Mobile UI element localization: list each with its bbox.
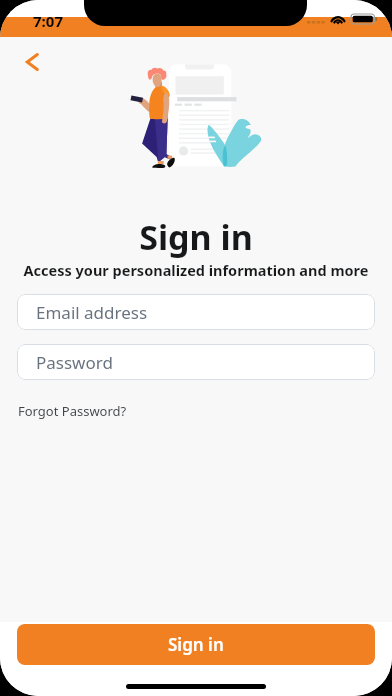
staticText: Email address [36, 301, 148, 324]
button[interactable]: Back [14, 44, 50, 80]
button[interactable]: Sign in [17, 624, 375, 665]
staticText: Access your personalized information and… [0, 260, 392, 280]
staticText: Sign in [0, 214, 392, 260]
staticText: 7:07 [33, 11, 63, 31]
button[interactable]: Email address [17, 294, 375, 330]
button[interactable]: Password [17, 344, 375, 380]
staticText: Password [36, 351, 113, 374]
staticText: Sign in [168, 633, 224, 656]
button[interactable]: Forgot Password? [18, 402, 127, 420]
